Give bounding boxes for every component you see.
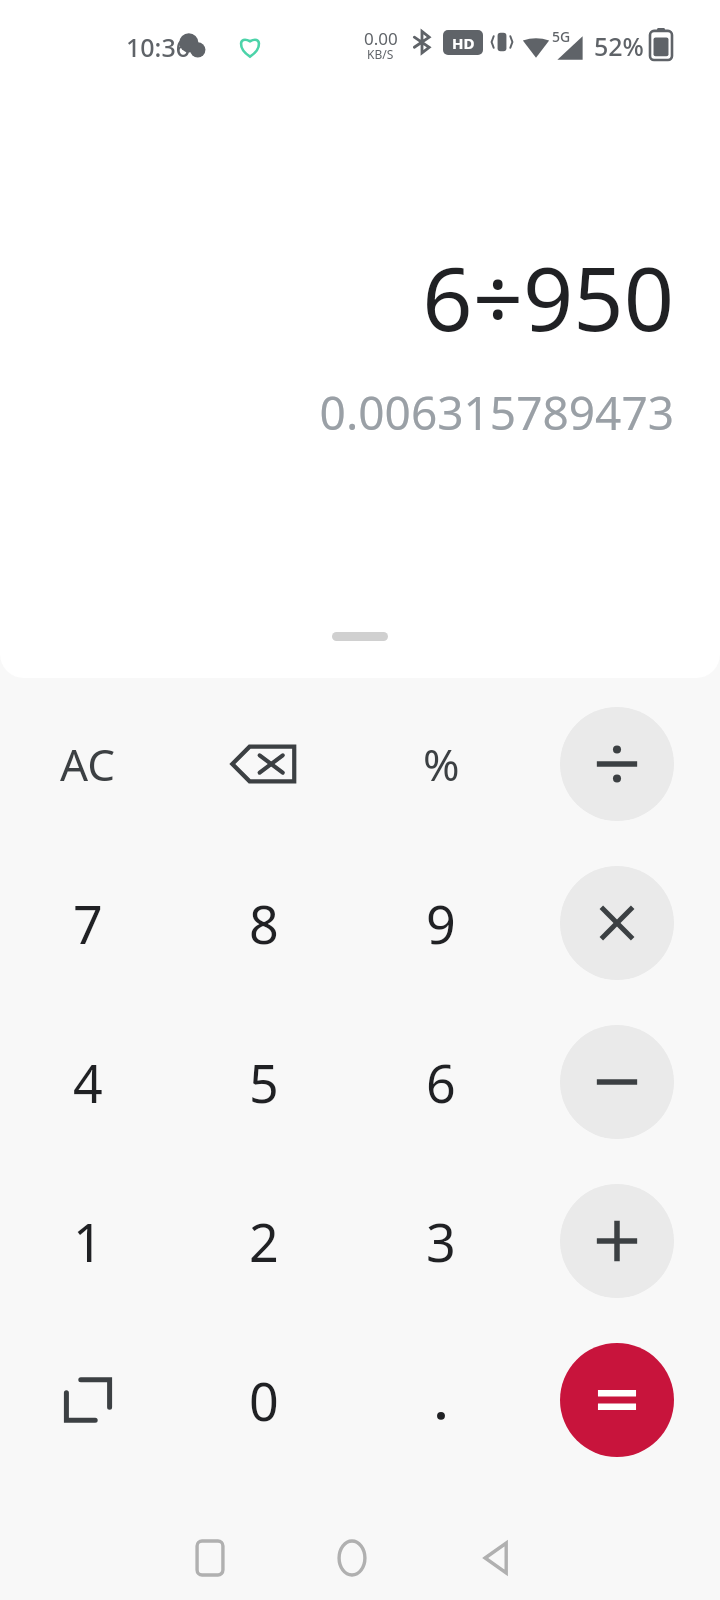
staticText: HD <box>452 33 475 53</box>
button[interactable]: Multiply <box>560 866 674 980</box>
button[interactable]: Minus <box>560 1025 674 1139</box>
button[interactable]: Plus <box>560 1184 674 1298</box>
staticText: 4 <box>73 1047 103 1118</box>
staticText: 5 <box>249 1047 279 1118</box>
staticText: 6 <box>426 1047 456 1118</box>
button[interactable]: 5 <box>194 1012 334 1152</box>
button[interactable]: 9 <box>371 853 511 993</box>
staticText: 1 <box>73 1206 103 1277</box>
button[interactable]: AC <box>18 694 158 834</box>
button[interactable]: 2 <box>194 1171 334 1311</box>
button[interactable]: 1 <box>18 1171 158 1311</box>
staticText: 10:36 <box>126 30 191 64</box>
staticText: AC <box>60 734 116 794</box>
staticText: 0 <box>249 1365 279 1436</box>
button[interactable]: 6 <box>371 1012 511 1152</box>
button[interactable]: Backspace <box>194 694 334 834</box>
button[interactable]: Decimal point <box>371 1330 511 1470</box>
staticText: 52% <box>594 29 644 63</box>
button[interactable]: Home <box>322 1528 382 1588</box>
staticText: 3 <box>426 1206 456 1277</box>
button[interactable]: 7 <box>18 853 158 993</box>
staticText: 2 <box>249 1206 279 1277</box>
staticText: 0.00 <box>364 27 398 50</box>
staticText: 8 <box>249 888 279 959</box>
button[interactable]: Back <box>466 1528 526 1588</box>
staticText: 6÷950 <box>0 237 674 357</box>
button[interactable]: 0 <box>194 1330 334 1470</box>
button[interactable]: % <box>371 694 511 834</box>
staticText: 9 <box>426 888 456 959</box>
staticText: % <box>423 734 460 794</box>
button[interactable]: 4 <box>18 1012 158 1152</box>
button[interactable]: Expand <box>18 1330 158 1470</box>
button[interactable]: Equals <box>560 1343 674 1457</box>
button[interactable]: Divide <box>560 707 674 821</box>
button[interactable]: 3 <box>371 1171 511 1311</box>
staticText: 5G <box>552 27 571 46</box>
staticText: KB/S <box>367 46 394 62</box>
button[interactable]: Recent apps <box>180 1528 240 1588</box>
staticText: 0.006315789473 <box>0 381 674 444</box>
button[interactable]: 8 <box>194 853 334 993</box>
staticText: 7 <box>73 888 103 959</box>
